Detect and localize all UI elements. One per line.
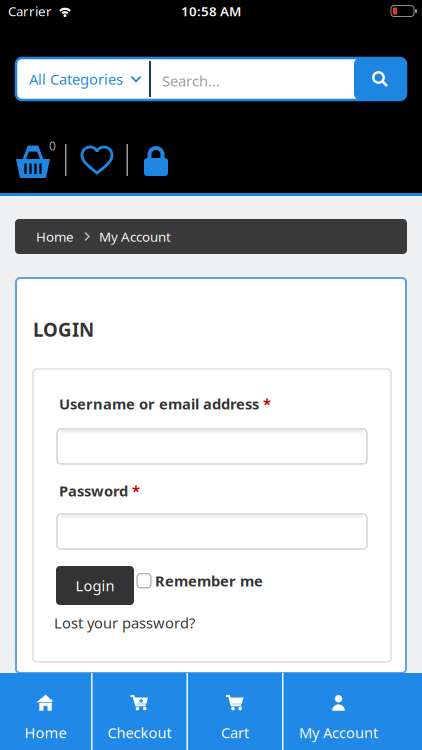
staticText: Search... <box>162 71 220 90</box>
staticText: 0 <box>49 138 56 154</box>
button[interactable]: Login <box>56 566 134 605</box>
staticText: * <box>132 481 140 500</box>
button[interactable]: Home <box>0 673 91 750</box>
staticText: Carrier <box>8 2 52 20</box>
button[interactable]: Remember me <box>137 571 263 590</box>
staticText: Login <box>75 576 114 595</box>
staticText: * <box>263 394 271 413</box>
staticText: Username or email address <box>59 394 259 413</box>
staticText: My Account <box>299 723 378 742</box>
staticText: 10:58 AM <box>181 2 241 20</box>
staticText: All Categories <box>29 69 123 89</box>
button[interactable]: Checkout <box>92 673 186 750</box>
button[interactable]: All Categories <box>16 58 149 100</box>
staticText: Home <box>36 228 74 245</box>
staticText: Remember me <box>155 571 263 590</box>
button[interactable]: Lost your password? <box>54 613 195 632</box>
button[interactable]: Home <box>36 228 74 245</box>
button[interactable]: Cart <box>16 141 56 179</box>
staticText: Cart <box>221 723 249 742</box>
staticText: My Account <box>99 228 171 245</box>
staticText: Password <box>59 481 128 500</box>
button[interactable]: My Account <box>283 673 393 750</box>
staticText: Checkout <box>107 723 171 742</box>
button[interactable]: Cart <box>188 673 282 750</box>
staticText: LOGIN <box>33 317 94 342</box>
staticText: Home <box>24 723 66 742</box>
staticText: Lost your password? <box>54 613 195 632</box>
button[interactable]: Login <box>128 144 168 176</box>
button[interactable]: Wishlist <box>66 145 126 175</box>
button[interactable]: Search <box>354 58 406 100</box>
